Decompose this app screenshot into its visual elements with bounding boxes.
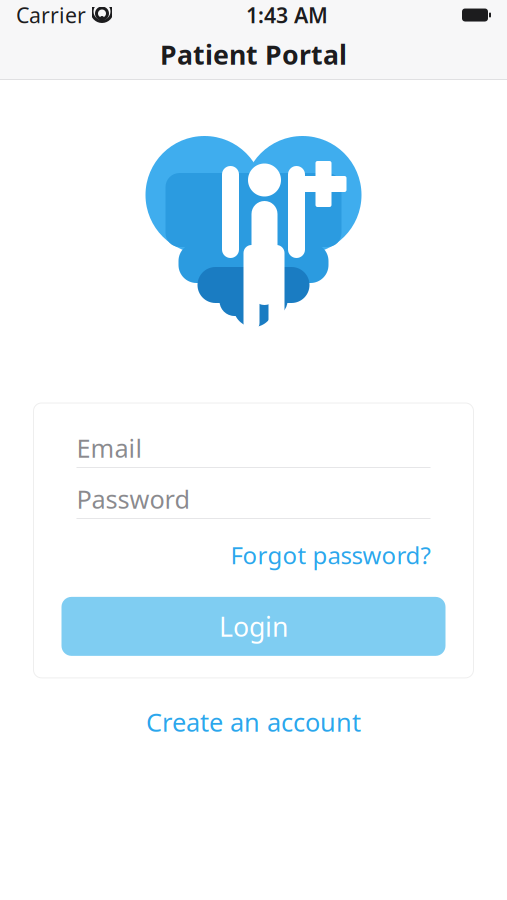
- staticText: Login: [219, 609, 288, 644]
- staticText: Patient Portal: [160, 37, 347, 72]
- staticText: Password: [76, 482, 190, 516]
- staticText: Forgot password?: [230, 539, 430, 571]
- button[interactable]: Login: [61, 597, 445, 656]
- button[interactable]: Create an account: [123, 702, 383, 742]
- staticText: 1:43 AM: [246, 1, 328, 29]
- staticText: Create an account: [146, 705, 361, 739]
- staticText: Email: [76, 431, 142, 465]
- button[interactable]: Forgot password?: [230, 539, 430, 571]
- staticText: Carrier: [16, 1, 86, 29]
